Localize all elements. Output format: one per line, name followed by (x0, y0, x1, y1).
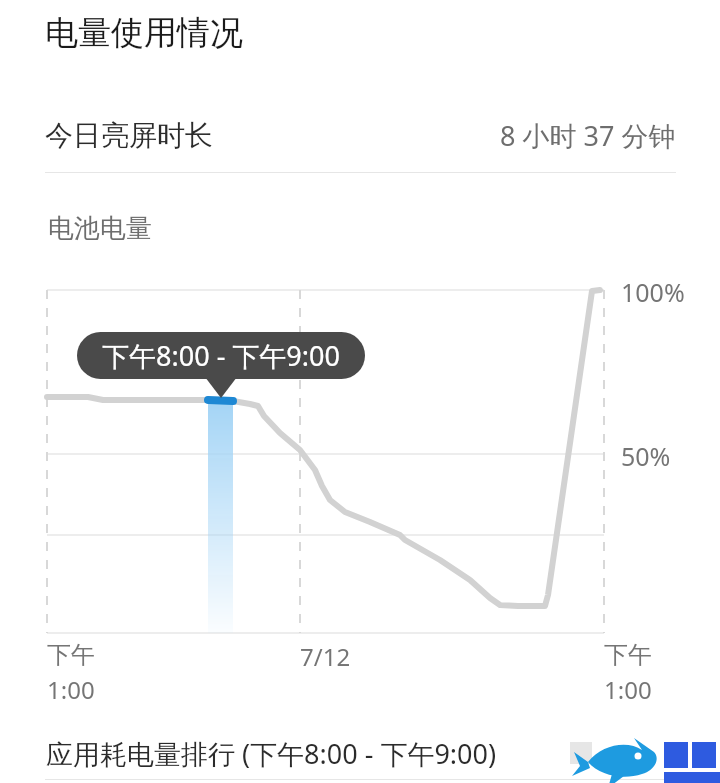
button[interactable]: 今日亮屏时长 (0, 98, 720, 172)
staticText: 50% (621, 439, 671, 473)
staticText: 100% (621, 275, 685, 309)
staticText: 1:00 (604, 673, 652, 706)
button[interactable]: 100% (0, 0, 720, 783)
staticText: 下午 (604, 640, 652, 670)
button[interactable]: 应用耗电量排行 (下午8:00 - 下午9:00) (0, 727, 720, 779)
staticText: 7/12 (300, 640, 351, 673)
button[interactable]: 下午8:00 - 下午9:00 (77, 332, 365, 379)
staticText: 1:00 (47, 673, 95, 706)
staticText: 电池电量 (48, 212, 152, 245)
staticText: 8 小时 37 分钟 (500, 117, 676, 154)
staticText: 下午 (47, 640, 95, 670)
other: Watermark (568, 736, 720, 783)
staticText: 应用耗电量排行 (下午8:00 - 下午9:00) (46, 735, 497, 772)
staticText: 今日亮屏时长 (45, 118, 213, 153)
staticText: 下午8:00 - 下午9:00 (102, 337, 340, 374)
staticText: 电量使用情况 (45, 12, 243, 54)
